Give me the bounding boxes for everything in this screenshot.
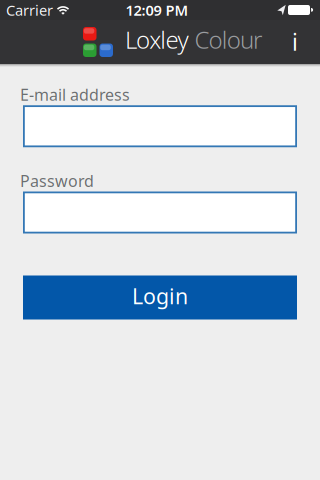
button[interactable]: Login <box>23 275 297 319</box>
staticText: E-mail address <box>20 84 130 105</box>
staticText: i <box>292 27 298 57</box>
staticText: 12:09 PM <box>125 0 188 20</box>
staticText: Loxley <box>125 24 188 55</box>
staticText: Carrier <box>6 0 53 20</box>
staticText: Colour <box>194 24 262 55</box>
button[interactable]: Info <box>273 20 317 64</box>
button[interactable]: Password <box>23 191 297 233</box>
staticText: Login <box>132 282 188 310</box>
staticText: Password <box>20 170 94 191</box>
button[interactable]: E-mail address <box>23 105 297 147</box>
